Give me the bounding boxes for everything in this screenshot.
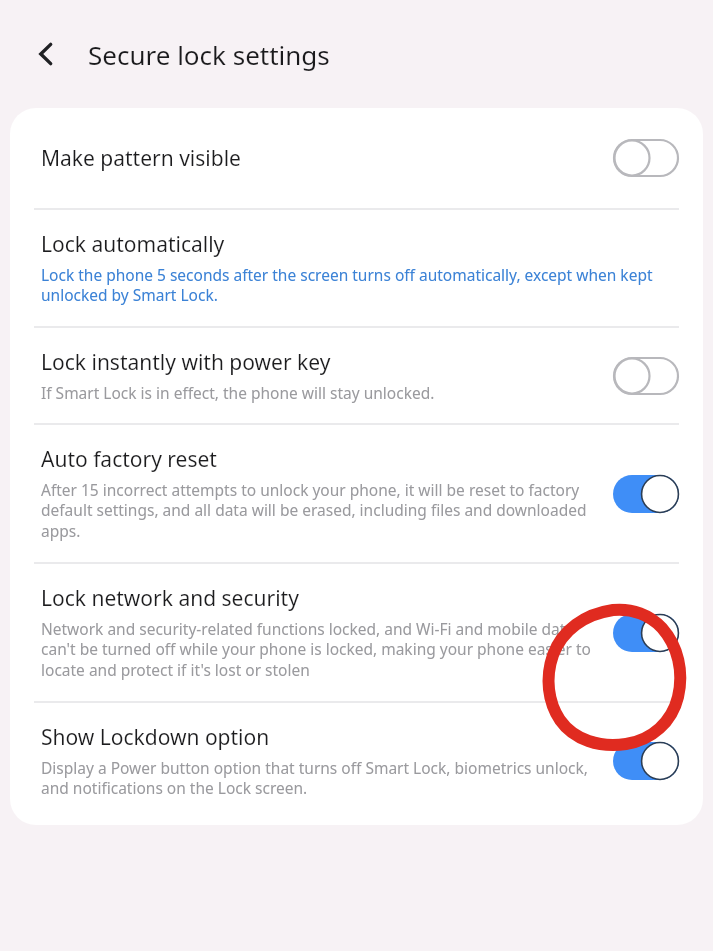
button[interactable]: Show Lockdown option — [10, 703, 703, 825]
button[interactable]: Lock instantly with power key, off — [607, 350, 685, 402]
button[interactable]: Lock instantly with power key — [10, 328, 703, 423]
staticText: After 15 incorrect attempts to unlock yo… — [41, 479, 597, 542]
staticText: Show Lockdown option — [41, 723, 270, 752]
staticText: Display a Power button option that turns… — [41, 757, 597, 799]
button[interactable]: Back — [22, 30, 70, 78]
staticText: Auto factory reset — [41, 445, 217, 474]
staticText: Lock instantly with power key — [41, 348, 331, 377]
button[interactable]: Lock network and security — [10, 564, 703, 701]
staticText: Network and security-related functions l… — [41, 618, 597, 681]
staticText: Lock automatically — [41, 230, 225, 259]
button[interactable]: Auto factory reset, on — [607, 468, 685, 520]
button[interactable]: Lock network and security, on — [607, 607, 685, 659]
staticText: Secure lock settings — [88, 37, 330, 72]
button[interactable]: Auto factory reset — [10, 425, 703, 562]
button[interactable]: Make pattern visible — [10, 108, 703, 208]
button[interactable]: Lock automatically — [10, 210, 703, 326]
staticText: If Smart Lock is in effect, the phone wi… — [41, 382, 435, 403]
staticText: Make pattern visible — [41, 144, 241, 173]
button[interactable]: Show Lockdown option, on — [607, 735, 685, 787]
staticText: Lock the phone 5 seconds after the scree… — [41, 264, 685, 306]
staticText: Lock network and security — [41, 584, 299, 613]
button[interactable]: Make pattern visible, off — [607, 132, 685, 184]
